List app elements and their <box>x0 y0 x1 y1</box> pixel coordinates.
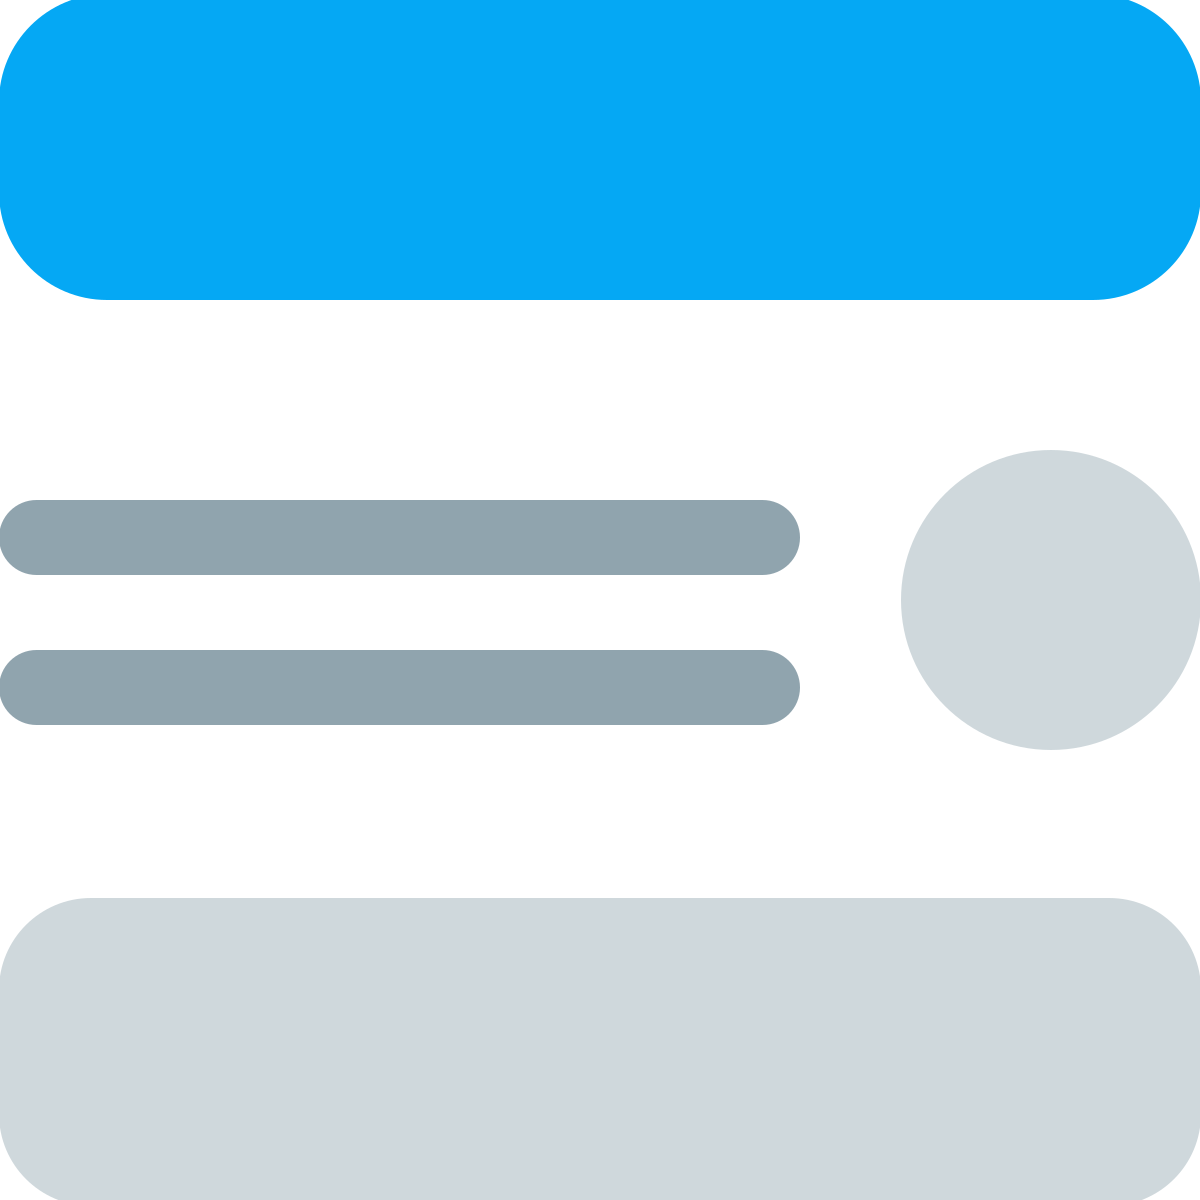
button[interactable]: Profile picture <box>901 450 1200 750</box>
button[interactable]: Media <box>0 898 1200 1200</box>
button[interactable]: Header <box>0 0 1200 300</box>
